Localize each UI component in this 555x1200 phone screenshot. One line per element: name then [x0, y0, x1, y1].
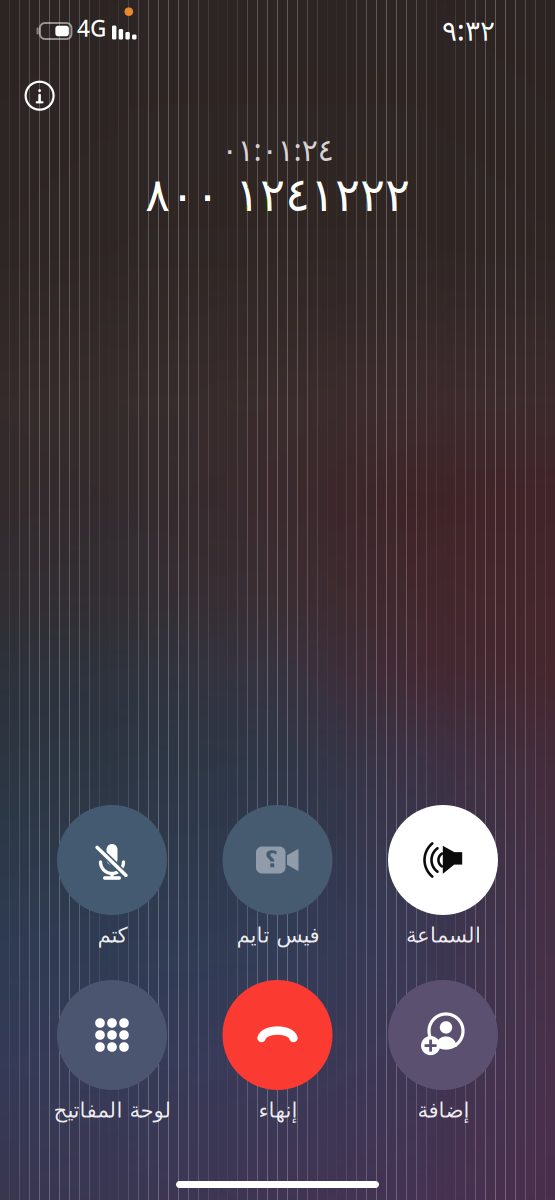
- staticText: ؟: [264, 847, 277, 872]
- button[interactable]: كتم: [29, 805, 195, 955]
- staticText: لوحة المفاتيح: [53, 1098, 171, 1122]
- button[interactable]: إضافة: [360, 980, 526, 1130]
- staticText: ٠١:٠١:٢٤: [221, 129, 333, 169]
- button[interactable]: السماعة: [360, 805, 526, 955]
- staticText: إنهاء: [258, 1098, 297, 1122]
- button[interactable]: لوحة المفاتيح: [29, 980, 195, 1130]
- button[interactable]: فيس تايم: [195, 805, 360, 955]
- staticText: فيس تايم: [236, 923, 319, 947]
- staticText: ٩:٣٢: [442, 11, 495, 49]
- staticText: إضافة: [417, 1098, 469, 1122]
- staticText: السماعة: [405, 923, 480, 947]
- staticText: 4G: [77, 13, 106, 43]
- staticText: كتم: [97, 923, 127, 947]
- button[interactable]: إنهاء: [195, 980, 360, 1130]
- button[interactable]: معلومات المكالمة: [20, 76, 60, 116]
- staticText: ‭٨٠٠ ١٢٤١٢٢٢: [145, 162, 410, 224]
